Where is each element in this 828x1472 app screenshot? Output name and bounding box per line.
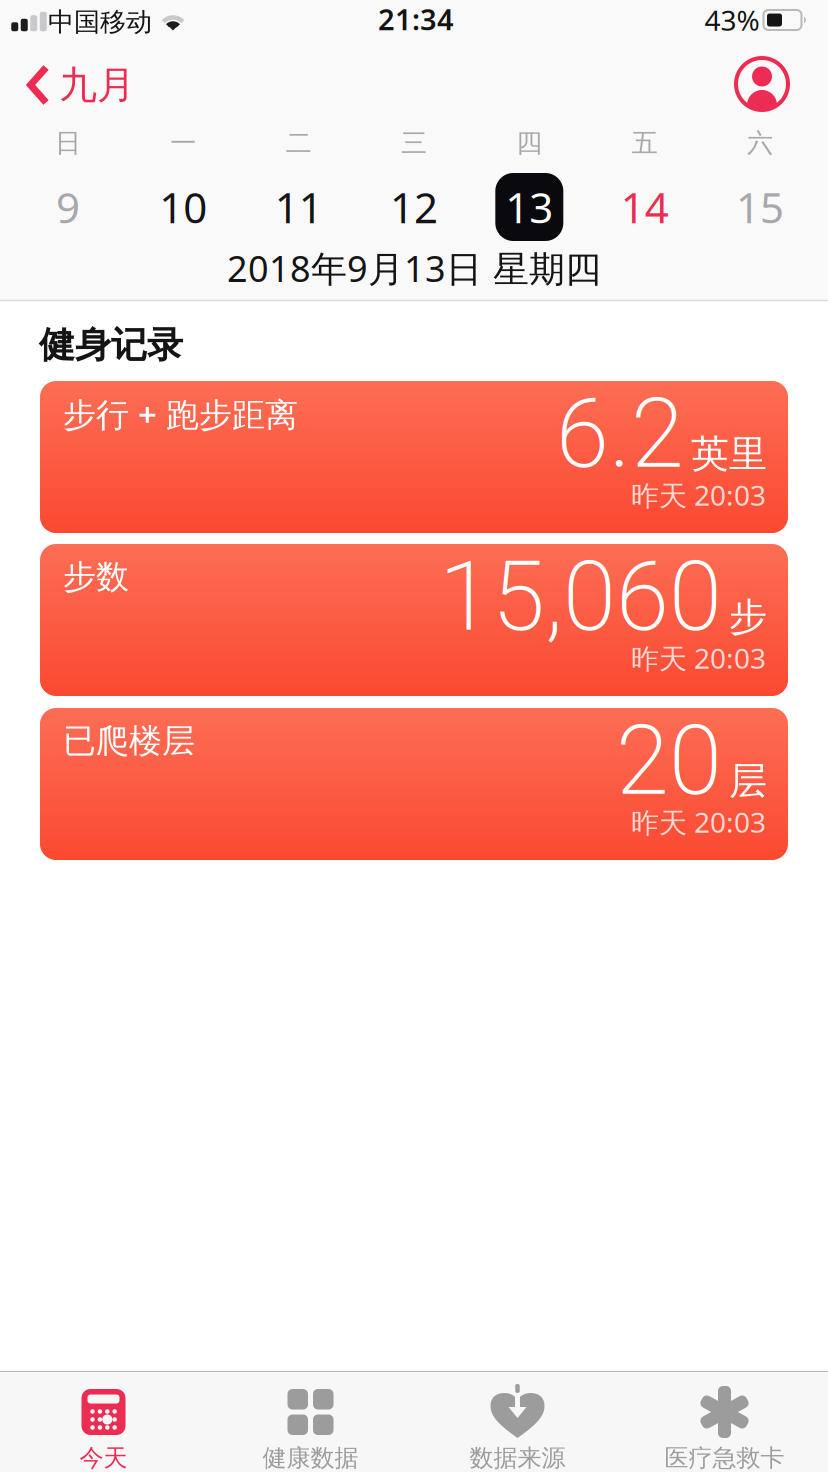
staticText: 昨天 20:03 [631, 639, 766, 677]
staticText: 10 [159, 179, 207, 235]
staticText: 9 [56, 179, 80, 235]
staticText: 步数 [63, 557, 129, 597]
button[interactable]: 医疗急救卡 [621, 1372, 828, 1472]
staticText: 九月 [59, 62, 135, 108]
staticText: 数据来源 [469, 1443, 565, 1472]
button[interactable]: 13 [484, 172, 574, 242]
button[interactable]: 9 [23, 172, 113, 242]
staticText: 日 [55, 127, 81, 159]
staticText: 6.2 [556, 378, 684, 490]
staticText: 13 [505, 179, 553, 235]
staticText: 已爬楼层 [63, 721, 195, 761]
staticText: 健康数据 [262, 1443, 358, 1472]
staticText: 中国移动 [48, 6, 152, 38]
staticText: 层 [729, 758, 767, 804]
staticText: 英里 [691, 431, 767, 477]
button[interactable]: 个人资料 [736, 58, 788, 110]
button[interactable]: 今天 [0, 1372, 207, 1472]
staticText: 步 [729, 594, 767, 640]
staticText: 20 [616, 705, 722, 817]
staticText: 一 [170, 127, 196, 159]
staticText: 医疗急救卡 [664, 1443, 784, 1472]
button[interactable]: 10 [138, 172, 228, 242]
button[interactable]: 11 [254, 172, 344, 242]
staticText: 15 [736, 179, 784, 235]
staticText: 15,060 [439, 541, 722, 653]
button[interactable]: 12 [369, 172, 459, 242]
staticText: 昨天 20:03 [631, 476, 766, 514]
button[interactable]: 步行 + 跑步距离 [40, 381, 788, 533]
button[interactable]: 已爬楼层 [40, 708, 788, 860]
button[interactable]: 返回九月 [27, 62, 135, 108]
button[interactable]: 数据来源 [414, 1372, 621, 1472]
button[interactable]: 步数 [40, 544, 788, 696]
staticText: 昨天 20:03 [631, 803, 766, 841]
staticText: 步行 + 跑步距离 [63, 392, 298, 436]
staticText: 今天 [79, 1443, 127, 1472]
button[interactable]: 健康数据 [207, 1372, 414, 1472]
staticText: 三 [401, 127, 427, 159]
staticText: 21:34 [378, 0, 454, 38]
staticText: 2018年9月13日 星期四 [227, 244, 601, 292]
staticText: 六 [747, 127, 773, 159]
staticText: 五 [632, 127, 658, 159]
staticText: 健身记录 [39, 323, 183, 367]
button[interactable]: 15 [715, 172, 805, 242]
staticText: 14 [621, 179, 669, 235]
staticText: 二 [286, 127, 312, 159]
staticText: 四 [516, 127, 542, 159]
staticText: 12 [390, 179, 438, 235]
button[interactable]: 14 [600, 172, 690, 242]
staticText: 43% [704, 1, 759, 39]
staticText: 11 [275, 179, 323, 235]
